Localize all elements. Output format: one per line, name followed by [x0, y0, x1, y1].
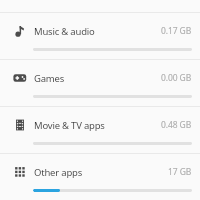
button[interactable]: Music & audio — [0, 12, 200, 59]
button[interactable]: Games — [0, 59, 200, 106]
staticText: Music & audio — [34, 25, 95, 38]
staticText: 0.48 GB — [161, 119, 192, 131]
staticText: Other apps — [34, 166, 83, 179]
staticText: 17 GB — [168, 166, 192, 178]
button[interactable]: Other apps — [0, 153, 200, 200]
button[interactable]: Movie & TV apps — [0, 106, 200, 153]
staticText: Movie & TV apps — [34, 119, 105, 132]
staticText: 0.00 GB — [161, 72, 192, 84]
staticText: 0.17 GB — [161, 25, 192, 37]
staticText: Games — [34, 72, 65, 85]
